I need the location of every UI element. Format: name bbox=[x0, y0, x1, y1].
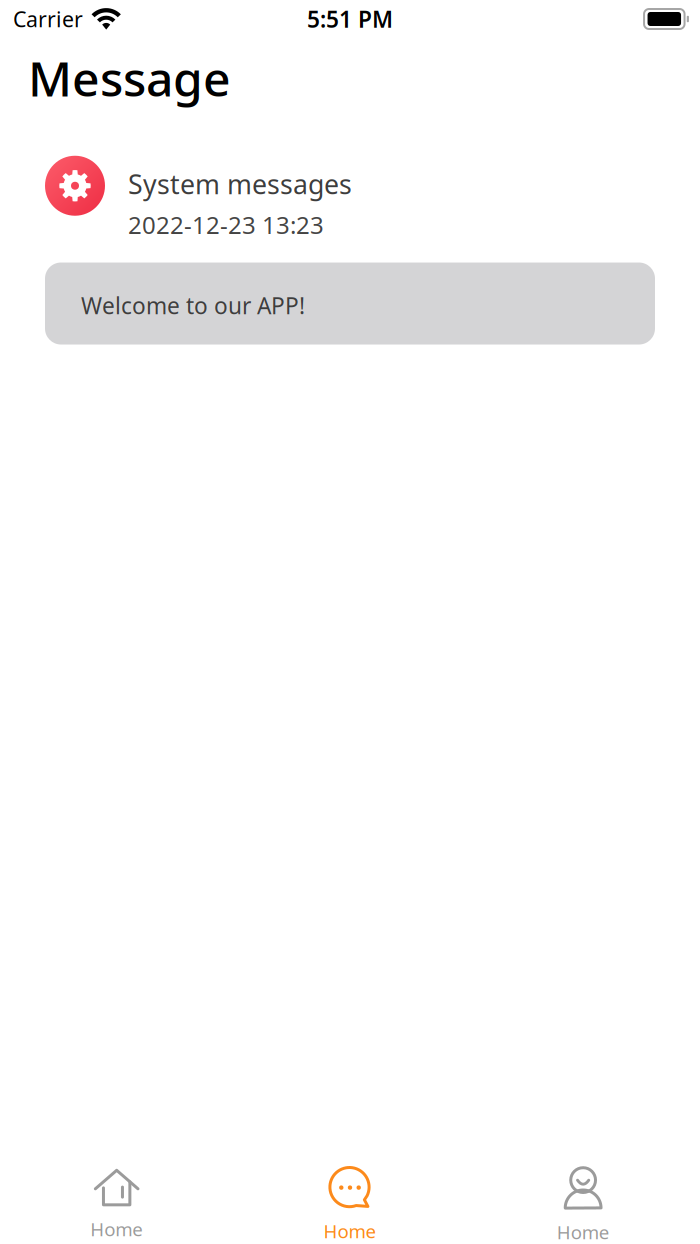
staticText: System messages bbox=[128, 166, 352, 202]
button[interactable]: Home bbox=[233, 1157, 467, 1244]
staticText: Welcome to our APP! bbox=[81, 290, 305, 321]
staticText: 2022-12-23 13:23 bbox=[128, 209, 324, 241]
staticText: 5:51 PM bbox=[307, 4, 393, 34]
staticText: Home bbox=[557, 1220, 610, 1244]
staticText: Message bbox=[28, 46, 231, 110]
staticText: Home bbox=[90, 1217, 143, 1241]
staticText: Carrier bbox=[13, 5, 83, 33]
button[interactable]: System messages bbox=[0, 156, 700, 344]
button[interactable]: Home bbox=[467, 1156, 700, 1244]
button[interactable]: Home bbox=[0, 1159, 233, 1244]
staticText: Home bbox=[323, 1219, 376, 1243]
